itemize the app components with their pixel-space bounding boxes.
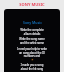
staticText: Sony Music bbox=[23, 20, 42, 25]
staticText: I need your help to write an song about … bbox=[7, 47, 57, 57]
staticText: Write the song name and the artist name bbox=[7, 37, 57, 44]
button[interactable]: SONY MUSIC bbox=[0, 0, 64, 9]
staticText: SONY MUSIC bbox=[19, 2, 45, 7]
staticText: Write the complete album details bbox=[7, 28, 57, 35]
staticText: ☀ bbox=[31, 58, 34, 61]
staticText: I made you a song about the hit song bbox=[7, 63, 57, 70]
